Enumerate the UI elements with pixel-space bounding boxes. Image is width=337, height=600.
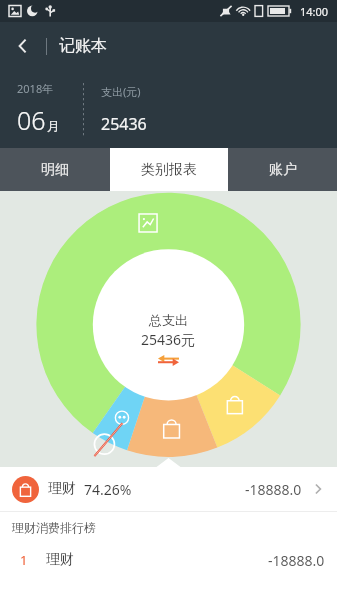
staticText: 月 [47, 118, 60, 134]
staticText: 2018年 [17, 81, 54, 96]
staticText: 理财 [48, 480, 76, 498]
staticText: -18888.0 [245, 480, 302, 499]
staticText: 记账本 [59, 36, 107, 56]
staticText: 74.26% [84, 480, 132, 499]
staticText: 明细 [41, 161, 69, 179]
staticText: 账户 [269, 161, 297, 179]
staticText: 理财 [46, 551, 74, 569]
staticText: 1 [20, 551, 28, 569]
staticText: 总支出 [149, 312, 188, 328]
staticText: 类别报表 [141, 161, 197, 179]
button[interactable]: 类别报表 [110, 148, 228, 191]
button[interactable]: 1 [0, 543, 337, 577]
button[interactable]: 账户 [228, 148, 337, 191]
staticText: 25436元 [141, 330, 196, 349]
staticText: 25436 [101, 113, 147, 135]
button[interactable]: Switch chart [158, 354, 179, 366]
staticText: 06 [17, 103, 46, 137]
button[interactable]: 理财 [0, 467, 337, 511]
staticText: -18888.0 [268, 551, 325, 570]
button[interactable]: Back [0, 22, 46, 70]
button[interactable]: 明细 [0, 148, 110, 191]
button[interactable] [0, 191, 337, 467]
staticText: 理财消费排行榜 [12, 520, 96, 535]
staticText: 支出(元) [101, 84, 141, 99]
staticText: 14:00 [300, 4, 329, 19]
